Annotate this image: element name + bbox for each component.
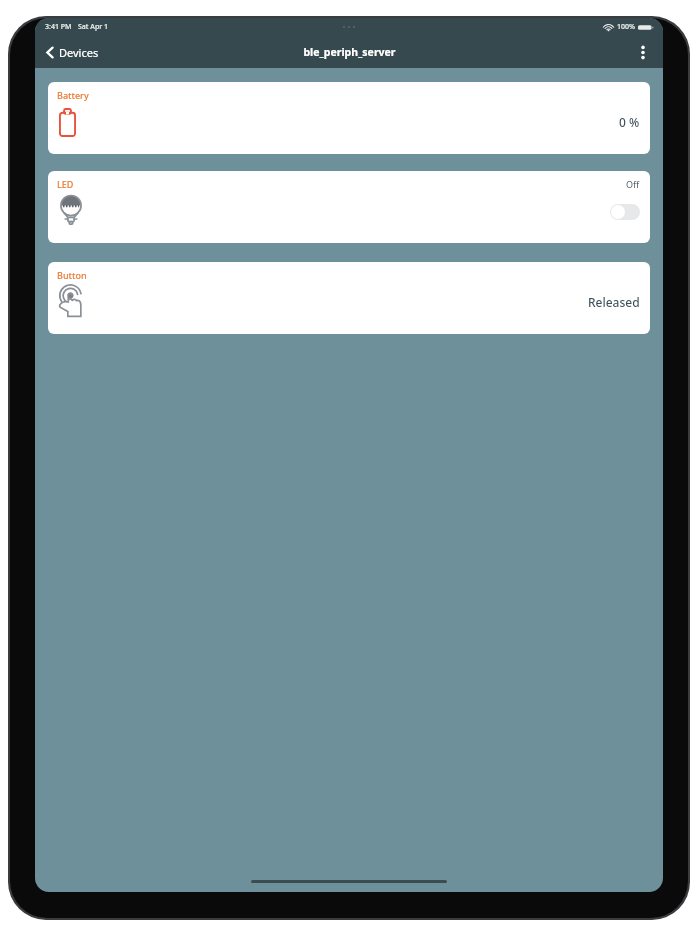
button[interactable]: LED (48, 171, 650, 243)
staticText: Button (57, 269, 87, 281)
staticText: Devices (59, 45, 99, 60)
staticText: Off (626, 178, 640, 190)
button[interactable]: Battery (48, 82, 650, 154)
staticText: 3:41 PM (45, 22, 72, 32)
staticText: ble_periph_server (303, 45, 396, 59)
button[interactable]: Devices (42, 41, 103, 64)
staticText: Released (588, 294, 640, 310)
button[interactable]: More options (631, 40, 655, 64)
staticText: Battery (57, 89, 89, 101)
staticText: LED (57, 178, 74, 190)
button[interactable]: Button (48, 262, 650, 334)
staticText: 100% (617, 22, 635, 32)
staticText: 0 % (619, 114, 640, 130)
button[interactable]: LED toggle, off (610, 204, 640, 220)
staticText: Sat Apr 1 (78, 22, 109, 32)
